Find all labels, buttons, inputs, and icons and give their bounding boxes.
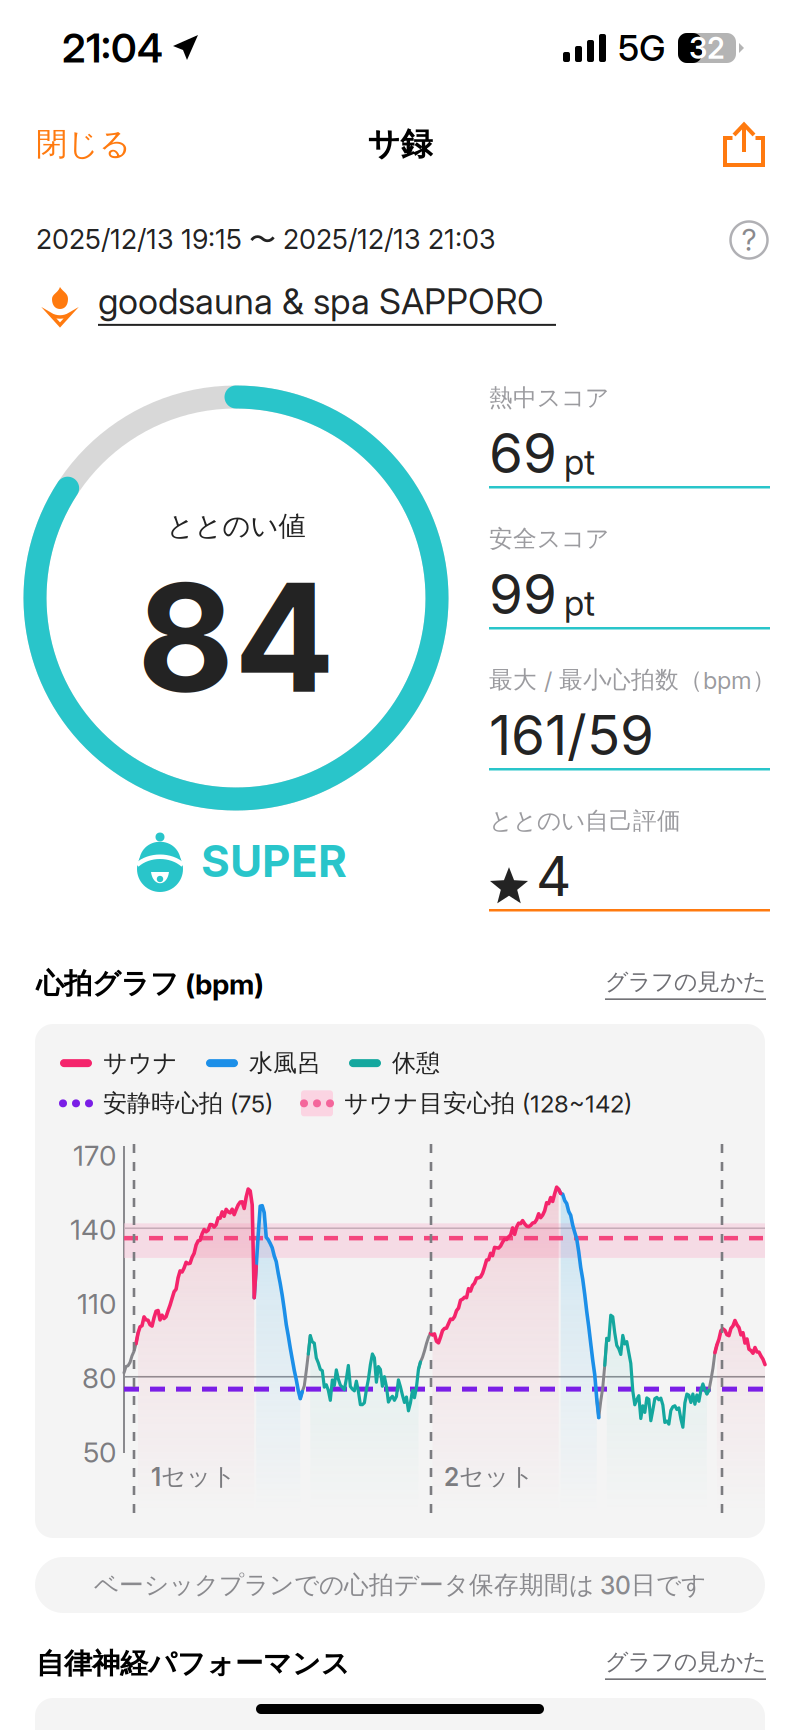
staticText: 心拍グラフ (bpm) — [36, 966, 264, 1001]
button[interactable]: Share — [722, 114, 766, 174]
staticText: 140 — [70, 1213, 116, 1247]
staticText: 99 — [489, 561, 557, 627]
staticText: 161/59 — [489, 702, 654, 768]
staticText: 5G — [618, 26, 666, 70]
staticText: 4 — [536, 843, 571, 909]
staticText: 84 — [137, 547, 335, 728]
button[interactable]: グラフの見かた — [605, 967, 766, 1000]
staticText: 自律神経パフォーマンス — [36, 1646, 350, 1681]
staticText: ? — [741, 222, 756, 258]
staticText: 170 — [73, 1138, 116, 1172]
staticText: 水風呂 — [249, 1048, 321, 1078]
staticText: ととのい値 — [166, 509, 305, 543]
staticText: 安静時心拍 (75) — [103, 1088, 273, 1118]
staticText: 最大 / 最小心拍数（bpm） — [489, 665, 776, 695]
staticText: サウナ目安心拍 (128~142) — [344, 1088, 632, 1118]
staticText: 2セット — [444, 1461, 534, 1492]
staticText: ベーシックプランでの心拍データ保存期間は 30日です — [94, 1569, 706, 1601]
staticText: 休憩 — [392, 1048, 440, 1078]
staticText: 32 — [689, 30, 725, 66]
staticText: 閉じる — [36, 124, 131, 164]
staticText: サ録 — [367, 124, 432, 164]
staticText: pt — [564, 582, 595, 624]
staticText: 69 — [489, 420, 557, 486]
staticText: グラフの見かた — [605, 1647, 766, 1676]
staticText: 熱中スコア — [489, 383, 609, 413]
button[interactable]: goodsauna & spa SAPPORO — [0, 261, 556, 329]
staticText: SUPER — [201, 834, 347, 888]
staticText: 80 — [82, 1361, 116, 1395]
staticText: 2025/12/13 19:15 〜 2025/12/13 21:03 — [36, 223, 496, 257]
staticText: 110 — [77, 1287, 116, 1321]
staticText: 安全スコア — [489, 524, 609, 554]
staticText: goodsauna & spa SAPPORO — [98, 280, 544, 323]
staticText: 50 — [83, 1435, 116, 1469]
staticText: ととのい自己評価 — [489, 806, 681, 836]
staticText: pt — [564, 441, 595, 483]
staticText: サウナ — [103, 1048, 178, 1078]
staticText: 21:04 — [62, 24, 163, 72]
button[interactable]: グラフの見かた — [605, 1647, 766, 1680]
button[interactable]: 閉じる — [36, 112, 131, 176]
staticText: グラフの見かた — [605, 967, 766, 996]
staticText: 1セット — [151, 1461, 236, 1492]
button[interactable]: Help — [728, 219, 770, 261]
